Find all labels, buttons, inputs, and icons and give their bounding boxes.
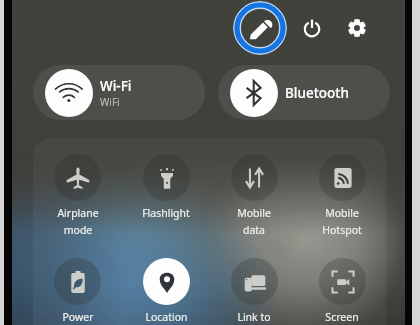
button[interactable]: Link to <box>210 258 298 325</box>
button[interactable]: Power <box>33 258 122 325</box>
button[interactable]: Mobile data <box>210 154 298 238</box>
button[interactable]: Settings <box>342 13 371 42</box>
button[interactable]: Airplane mode <box>33 154 122 238</box>
staticText: WiFi <box>100 95 120 109</box>
staticText: Airplane mode <box>57 206 99 237</box>
button[interactable]: Flashlight <box>122 154 210 238</box>
button[interactable]: Bluetooth <box>218 65 390 120</box>
staticText: Screen <box>325 310 359 324</box>
staticText: Mobile Hotspot <box>322 206 362 237</box>
staticText: Mobile data <box>237 206 271 237</box>
button[interactable]: Mobile Hotspot <box>298 154 386 238</box>
staticText: Flashlight <box>142 206 190 220</box>
staticText: Bluetooth <box>285 84 349 102</box>
staticText: Link to <box>237 310 271 324</box>
button[interactable]: Location <box>122 258 210 325</box>
button[interactable]: Screen <box>298 258 386 325</box>
staticText: Wi-Fi <box>100 77 132 95</box>
button[interactable]: Edit <box>233 1 287 55</box>
staticText: Power <box>62 310 94 324</box>
button[interactable]: Wi-Fi <box>33 65 205 120</box>
staticText: Location <box>145 310 188 324</box>
button[interactable]: Power off <box>297 13 326 42</box>
